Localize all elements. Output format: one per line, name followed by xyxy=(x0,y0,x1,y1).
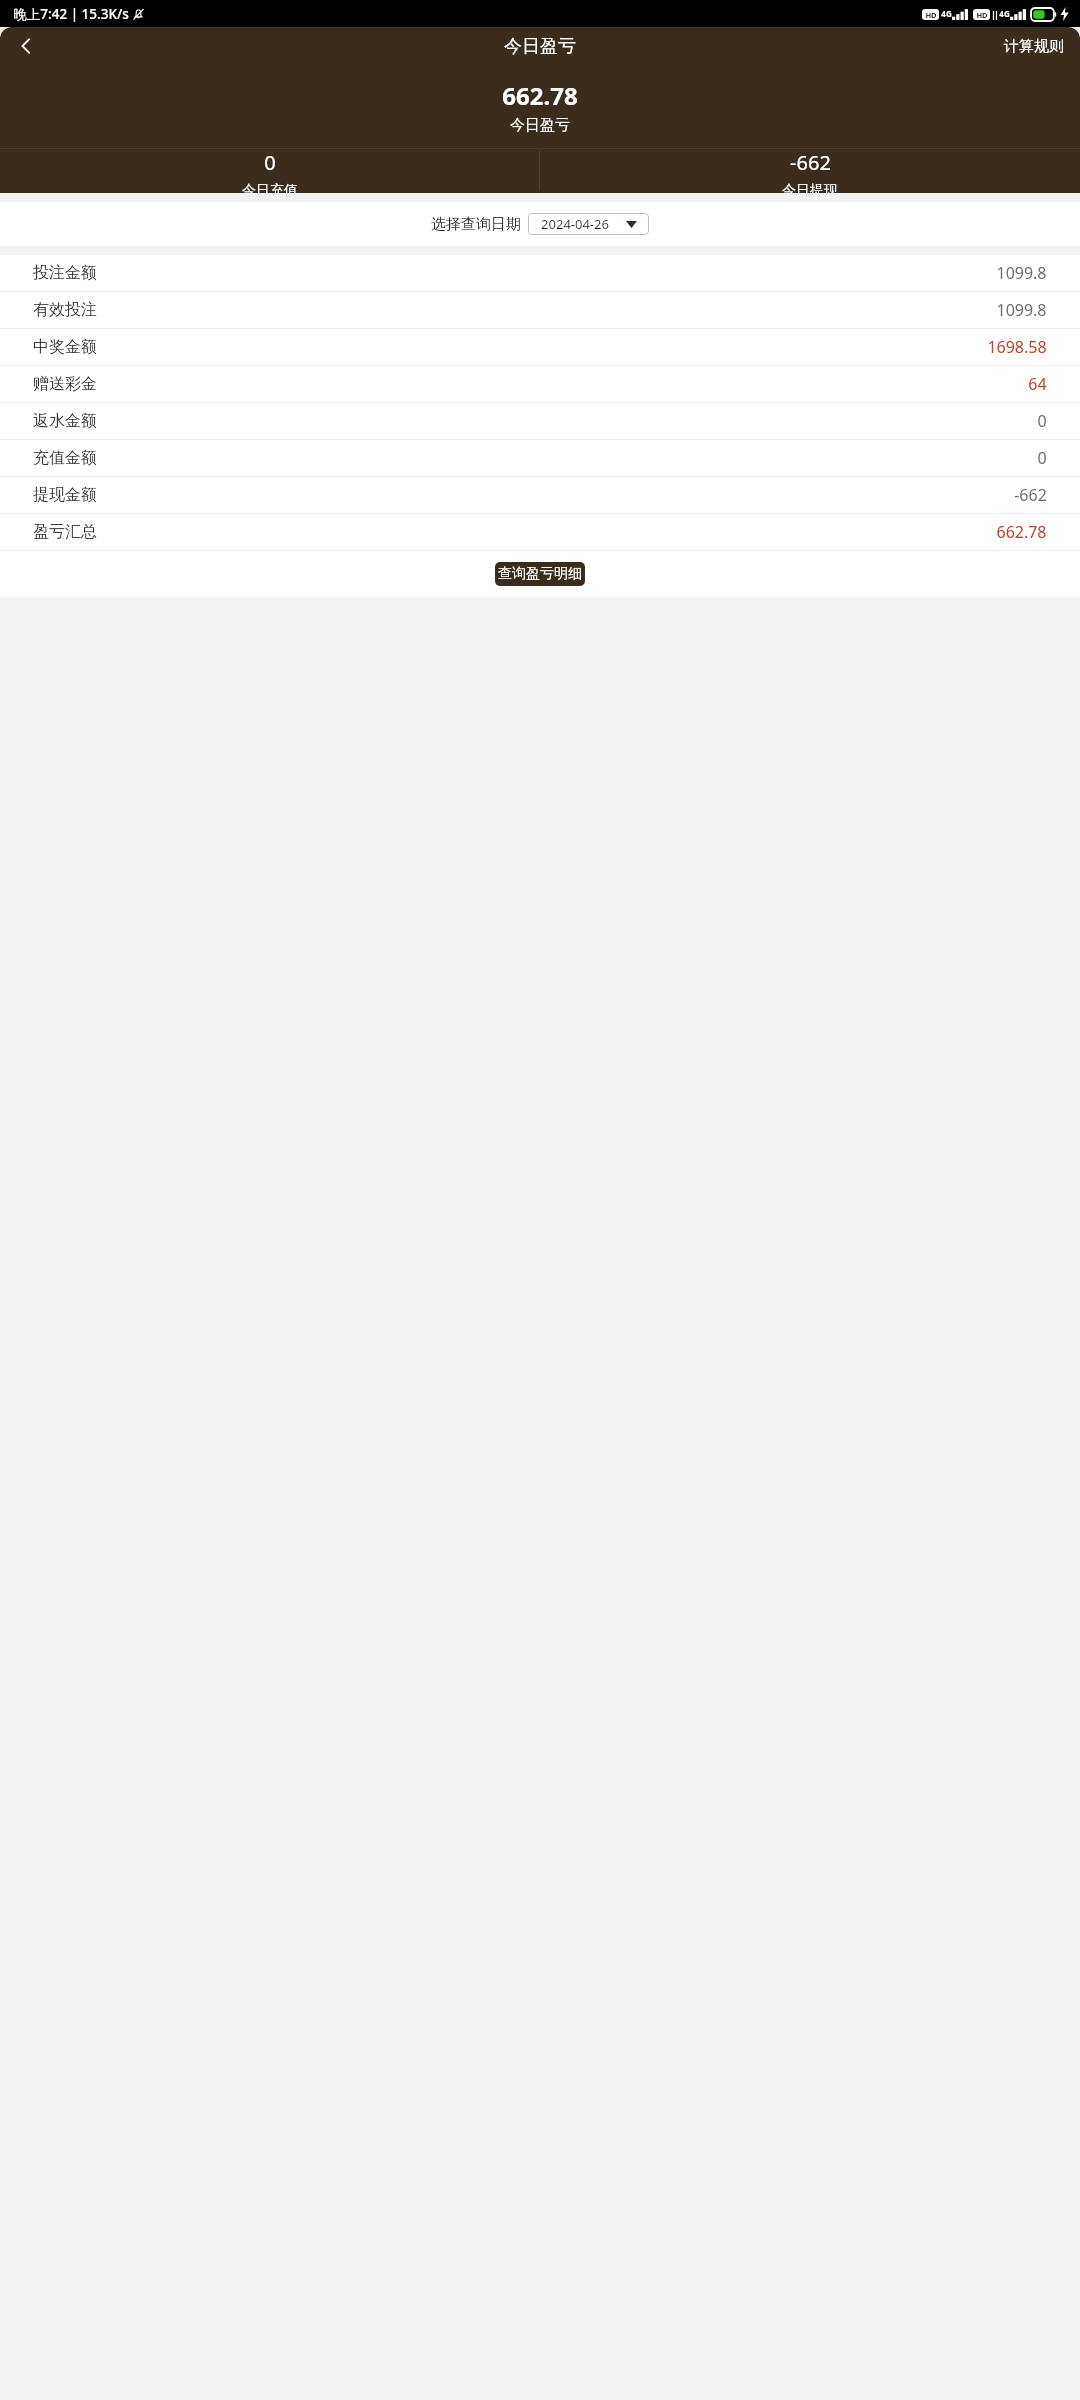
button[interactable]: 盈亏汇总 xyxy=(0,514,1080,550)
staticText: 今日盈亏 xyxy=(510,116,570,135)
staticText: 662.78 xyxy=(502,79,578,112)
staticText: 充值金额 xyxy=(33,448,97,468)
staticText: 今日盈亏 xyxy=(504,35,576,58)
button[interactable]: 中奖金额 xyxy=(0,329,1080,365)
staticText: 1099.8 xyxy=(996,299,1047,321)
button[interactable]: 充值金额 xyxy=(0,440,1080,476)
staticText: 4G xyxy=(999,8,1010,19)
staticText: 盈亏汇总 xyxy=(33,522,97,542)
staticText: 赠送彩金 xyxy=(33,374,97,394)
button[interactable]: 提现金额 xyxy=(0,477,1080,513)
staticText: 662.78 xyxy=(996,521,1047,543)
staticText: 选择查询日期 xyxy=(431,215,521,234)
staticText: 计算规则 xyxy=(1004,37,1064,56)
button[interactable]: 返水金额 xyxy=(0,403,1080,439)
button[interactable]: 计算规则 xyxy=(988,31,1080,62)
staticText: 1099.8 xyxy=(996,262,1047,284)
button[interactable]: 0 xyxy=(0,149,539,193)
staticText: HD xyxy=(925,10,937,20)
staticText: -662 xyxy=(1014,484,1047,506)
staticText: 64 xyxy=(1028,373,1047,395)
button[interactable]: 2024-04-26 xyxy=(528,213,649,235)
staticText: 晚上7:42 | 15.3K/s xyxy=(13,5,129,23)
button[interactable]: 查询盈亏明细 xyxy=(495,562,585,586)
staticText: 提现金额 xyxy=(33,485,97,505)
staticText: HD xyxy=(976,10,988,20)
staticText: 中奖金额 xyxy=(33,337,97,357)
button[interactable]: -662 xyxy=(540,149,1080,193)
staticText: 2024-04-26 xyxy=(541,215,609,233)
button[interactable]: 投注金额 xyxy=(0,255,1080,291)
staticText: 有效投注 xyxy=(33,300,97,320)
staticText: 今日充值 xyxy=(242,182,298,193)
staticText: 0 xyxy=(1037,410,1047,432)
staticText: -662 xyxy=(790,149,831,176)
staticText: 4G xyxy=(941,8,952,19)
staticText: 查询盈亏明细 xyxy=(498,565,582,583)
staticText: 返水金额 xyxy=(33,411,97,431)
staticText: 投注金额 xyxy=(33,263,97,283)
staticText: 0 xyxy=(1037,447,1047,469)
button[interactable]: 赠送彩金 xyxy=(0,366,1080,402)
button[interactable]: Back xyxy=(6,27,46,65)
staticText: 0 xyxy=(264,149,276,176)
staticText: 今日提现 xyxy=(782,182,838,193)
staticText: 1698.58 xyxy=(987,336,1047,358)
button[interactable]: 有效投注 xyxy=(0,292,1080,328)
